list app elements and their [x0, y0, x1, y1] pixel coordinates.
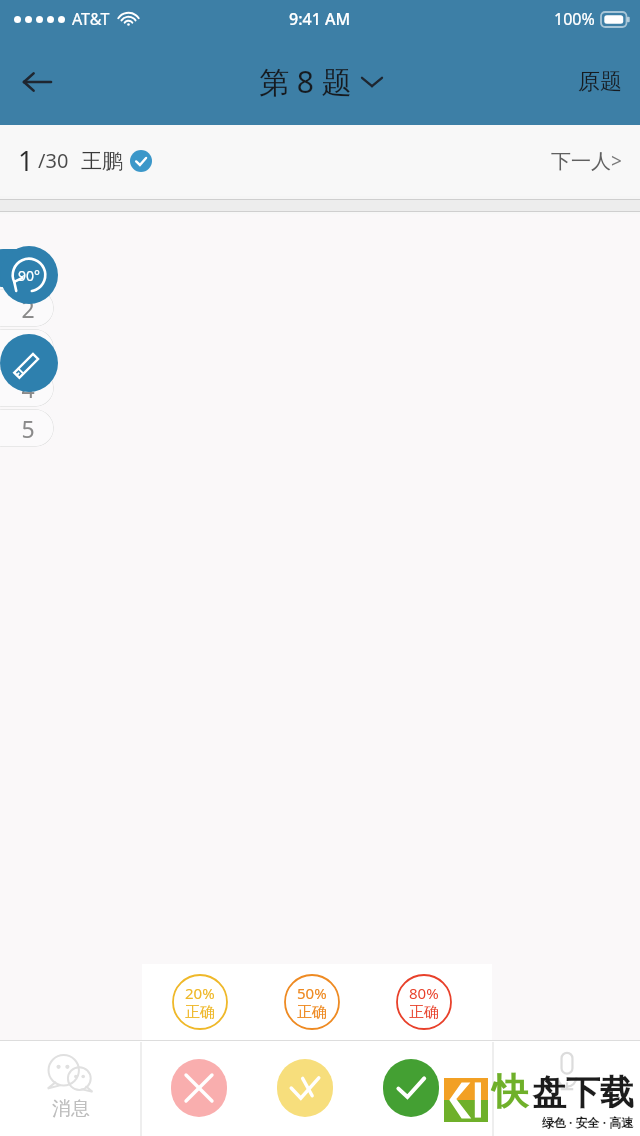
staticText: 第 8 题	[259, 61, 352, 102]
button[interactable]: Mark correct	[383, 1059, 439, 1117]
button[interactable]: Mark partially correct	[277, 1059, 333, 1117]
button[interactable]: 消息	[0, 1040, 141, 1136]
button[interactable]: 3	[0, 329, 54, 367]
staticText: 正确	[409, 1003, 439, 1022]
staticText: 正确	[297, 1003, 327, 1022]
staticText: 1	[18, 142, 34, 179]
button[interactable]: 80%	[396, 974, 452, 1030]
staticText: 80%	[409, 983, 439, 1003]
button[interactable]: 2	[0, 289, 54, 327]
staticText: >	[611, 148, 622, 174]
staticText: 快	[492, 1069, 528, 1114]
staticText: 原题	[578, 68, 622, 96]
button[interactable]: 50%	[284, 974, 340, 1030]
button[interactable]: 第 8 题	[259, 61, 382, 102]
staticText: 20%	[185, 983, 215, 1003]
staticText: 3	[21, 333, 35, 364]
staticText: 90°	[18, 266, 41, 285]
button[interactable]: Rotate 90 degrees	[0, 246, 58, 304]
button[interactable]: Edit	[0, 334, 58, 392]
staticText: 2	[21, 293, 35, 324]
staticText: 4	[21, 373, 35, 404]
staticText: /30	[38, 147, 69, 174]
button[interactable]: 5	[0, 409, 54, 447]
button[interactable]: 原题	[560, 54, 640, 110]
button[interactable]: Voice input	[493, 1040, 640, 1136]
button[interactable]: Back	[8, 54, 64, 110]
staticText: 50%	[297, 983, 327, 1003]
staticText: 5	[21, 413, 35, 444]
button[interactable]: 下一人	[533, 136, 640, 186]
button[interactable]: Mark wrong	[171, 1059, 227, 1117]
staticText: 王鹏	[81, 148, 123, 174]
staticText: 100%	[554, 8, 595, 30]
staticText: 9:41 AM	[289, 8, 351, 30]
staticText: AT&T	[72, 8, 110, 30]
button[interactable]: 1	[0, 249, 54, 287]
staticText: 消息	[52, 1097, 90, 1121]
staticText: 下一人	[551, 149, 611, 174]
button[interactable]: 4	[0, 369, 54, 407]
staticText: 绿色 · 安全 · 高速	[542, 1114, 634, 1130]
staticText: 盘下载	[532, 1071, 634, 1114]
staticText: 正确	[185, 1003, 215, 1022]
button[interactable]: 20%	[172, 974, 228, 1030]
staticText: 1	[21, 253, 35, 284]
